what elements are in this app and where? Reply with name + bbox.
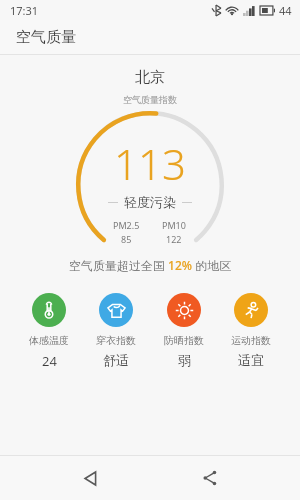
button[interactable]: Back: [60, 456, 120, 500]
staticText: 运动指数: [231, 334, 271, 347]
staticText: 44: [279, 3, 292, 18]
button[interactable]: 穿衣指数: [92, 291, 140, 370]
staticText: 北京: [135, 68, 165, 87]
staticText: 85: [121, 233, 132, 243]
staticText: 空气质量超过全国 12% 的地区: [69, 257, 232, 273]
staticText: 24: [42, 352, 57, 370]
button[interactable]: 体感温度: [25, 291, 73, 372]
staticText: 轻度污染: [124, 194, 176, 210]
button[interactable]: 防晒指数: [160, 291, 208, 370]
staticText: 17:31: [10, 3, 39, 18]
staticText: 穿衣指数: [96, 334, 136, 347]
staticText: 113: [114, 135, 186, 192]
staticText: 空气质量指数: [123, 94, 177, 105]
staticText: PM10: [162, 219, 186, 231]
button[interactable]: Share: [180, 456, 240, 500]
staticText: 舒适: [103, 352, 129, 368]
staticText: 122: [166, 233, 182, 243]
button[interactable]: 运动指数: [227, 291, 275, 370]
staticText: 适宜: [238, 352, 264, 368]
staticText: 体感温度: [29, 334, 69, 347]
staticText: 防晒指数: [164, 334, 204, 347]
staticText: PM2.5: [113, 219, 140, 231]
staticText: 弱: [178, 352, 191, 368]
staticText: 空气质量: [16, 28, 76, 47]
